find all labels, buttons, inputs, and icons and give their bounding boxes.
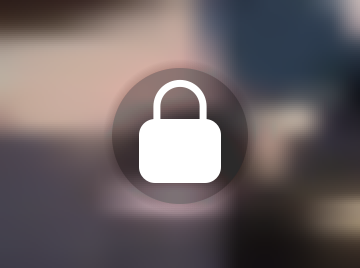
button[interactable]: Unlock — [0, 0, 360, 268]
